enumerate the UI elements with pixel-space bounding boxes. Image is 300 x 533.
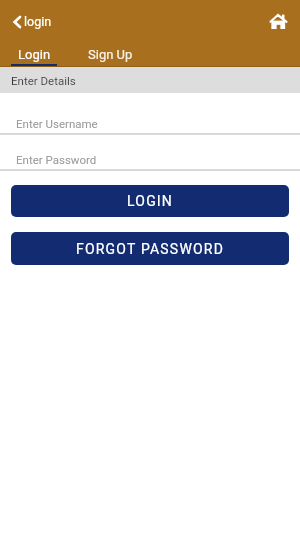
- staticText: Sign Up: [88, 47, 133, 62]
- button[interactable]: Enter Username: [0, 93, 300, 135]
- button[interactable]: [270, 14, 287, 29]
- button[interactable]: login: [13, 14, 52, 29]
- staticText: Enter Password: [16, 153, 97, 166]
- button[interactable]: Enter Password: [0, 135, 300, 171]
- staticText: FORGOT PASSWORD: [76, 241, 225, 257]
- staticText: Login: [18, 47, 51, 62]
- button[interactable]: LOGIN: [11, 185, 289, 217]
- button[interactable]: Sign Up: [84, 42, 136, 67]
- button[interactable]: FORGOT PASSWORD: [11, 232, 289, 265]
- staticText: Enter Username: [16, 117, 98, 130]
- button[interactable]: Login: [11, 42, 57, 67]
- staticText: Enter Details: [11, 74, 76, 87]
- staticText: login: [24, 14, 52, 29]
- staticText: LOGIN: [127, 193, 174, 209]
